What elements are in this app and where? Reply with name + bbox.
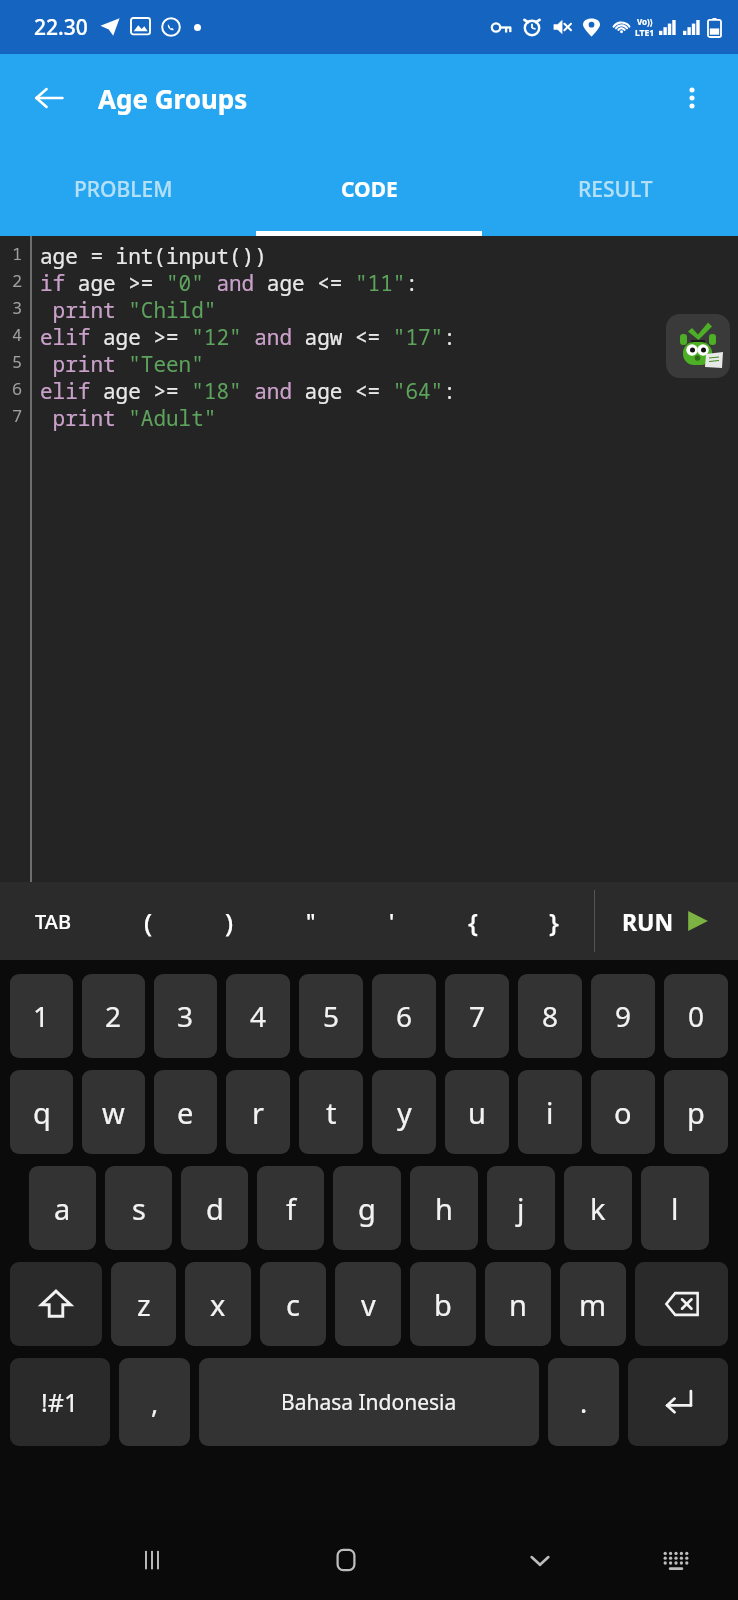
staticText: print "Adult" (40, 404, 217, 431)
button[interactable]: ' (351, 882, 432, 960)
button[interactable]: 5 (299, 974, 363, 1058)
button[interactable]: t (299, 1070, 363, 1154)
staticText: if age >= "0" and age <= "11": (40, 269, 418, 296)
button[interactable]: RUN (594, 882, 738, 960)
button[interactable]: } (513, 882, 594, 960)
button[interactable]: b (410, 1262, 476, 1346)
staticText: w (102, 1093, 125, 1132)
staticText: { (468, 904, 478, 939)
button[interactable]: 6 (372, 974, 436, 1058)
staticText: x (210, 1285, 226, 1324)
button[interactable]: s (105, 1166, 172, 1250)
staticText: q (33, 1093, 51, 1132)
button[interactable]: g (333, 1166, 401, 1250)
button[interactable]: y (372, 1070, 436, 1154)
staticText: f (286, 1189, 296, 1228)
button[interactable]: i (518, 1070, 582, 1154)
button[interactable]: Backspace (635, 1262, 728, 1346)
button[interactable]: h (410, 1166, 478, 1250)
button[interactable]: p (664, 1070, 728, 1154)
staticText: j (517, 1189, 525, 1228)
button[interactable]: Back (20, 69, 78, 127)
staticText: RUN (622, 906, 674, 937)
button[interactable]: f (257, 1166, 324, 1250)
staticText: r (252, 1093, 264, 1132)
button[interactable]: , (119, 1358, 190, 1446)
button[interactable]: c (260, 1262, 326, 1346)
staticText: s (132, 1189, 146, 1228)
staticText: 6 (396, 997, 413, 1035)
staticText: 1 (12, 242, 23, 265)
staticText: v (361, 1285, 376, 1324)
staticText: ( (144, 904, 153, 939)
staticText: 0 (688, 997, 705, 1035)
button[interactable]: u (445, 1070, 509, 1154)
button[interactable]: !#1 (10, 1358, 110, 1446)
staticText: Age Groups (98, 81, 248, 116)
button[interactable]: ( (107, 882, 189, 960)
staticText: z (137, 1285, 151, 1324)
button[interactable]: 3 (154, 974, 217, 1058)
staticText: 22.30 (34, 13, 88, 42)
staticText: h (435, 1189, 453, 1228)
button[interactable]: 7 (445, 974, 509, 1058)
button[interactable]: e (154, 1070, 217, 1154)
staticText: i (546, 1093, 554, 1132)
button[interactable]: 0 (664, 974, 728, 1058)
staticText: e (177, 1093, 194, 1132)
button[interactable]: 1 (0, 236, 738, 882)
button[interactable]: " (270, 882, 351, 960)
button[interactable]: 9 (591, 974, 655, 1058)
button[interactable]: j (487, 1166, 555, 1250)
button[interactable]: z (111, 1262, 176, 1346)
button[interactable]: Enter (628, 1358, 728, 1446)
button[interactable]: 2 (82, 974, 145, 1058)
staticText: d (206, 1189, 224, 1228)
staticText: 6 (12, 377, 23, 400)
button[interactable]: 1 (10, 974, 73, 1058)
button[interactable]: Hide keyboard (508, 1528, 572, 1592)
button[interactable]: { (432, 882, 513, 960)
staticText: 8 (542, 997, 559, 1035)
button[interactable]: 4 (226, 974, 290, 1058)
button[interactable]: a (29, 1166, 96, 1250)
button[interactable]: Bahasa Indonesia (199, 1358, 539, 1446)
button[interactable]: v (335, 1262, 401, 1346)
staticText: k (590, 1189, 606, 1228)
staticText: ' (389, 906, 395, 936)
staticText: elif age >= "12" and agw <= "17": (40, 323, 456, 350)
button[interactable]: w (82, 1070, 145, 1154)
button[interactable]: RESULT (492, 142, 738, 236)
staticText: Bahasa Indonesia (281, 1388, 457, 1417)
button[interactable]: 8 (518, 974, 582, 1058)
staticText: l (671, 1189, 679, 1228)
staticText: elif age >= "18" and age <= "64": (40, 377, 456, 404)
button[interactable]: ) (189, 882, 270, 960)
staticText: 4 (12, 323, 23, 346)
button[interactable]: . (548, 1358, 619, 1446)
button[interactable]: Switch keyboard (644, 1528, 708, 1592)
button[interactable]: d (181, 1166, 248, 1250)
button[interactable]: Shift (10, 1262, 102, 1346)
staticText: 3 (177, 997, 194, 1035)
button[interactable]: k (564, 1166, 632, 1250)
button[interactable]: Recents (120, 1528, 184, 1592)
staticText: 3 (12, 296, 23, 319)
button[interactable]: Home (314, 1528, 378, 1592)
button[interactable]: r (226, 1070, 290, 1154)
button[interactable]: n (485, 1262, 551, 1346)
staticText: TAB (35, 908, 72, 935)
button[interactable]: x (185, 1262, 251, 1346)
button[interactable]: Assistant (666, 314, 730, 378)
button[interactable]: TAB (0, 882, 107, 960)
staticText: t (326, 1093, 337, 1132)
button[interactable]: More options (664, 70, 720, 126)
button[interactable]: m (560, 1262, 626, 1346)
button[interactable]: o (591, 1070, 655, 1154)
staticText: o (614, 1093, 632, 1132)
button[interactable]: CODE (246, 142, 492, 236)
button[interactable]: q (10, 1070, 73, 1154)
staticText: m (579, 1285, 607, 1324)
button[interactable]: l (641, 1166, 709, 1250)
button[interactable]: PROBLEM (0, 142, 246, 236)
